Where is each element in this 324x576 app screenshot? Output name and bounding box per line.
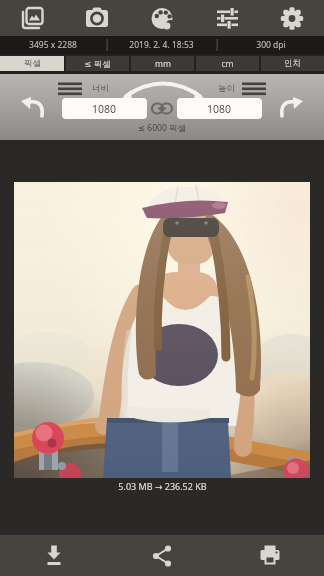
button[interactable]: ≤ 픽셀 [66, 56, 129, 71]
button[interactable]: 픽셀 [0, 56, 64, 71]
button[interactable] [56, 80, 84, 98]
button[interactable] [278, 96, 306, 122]
button[interactable]: cm [196, 56, 259, 71]
button[interactable] [18, 96, 46, 122]
button[interactable] [216, 535, 324, 576]
button[interactable]: 1080 [177, 98, 262, 119]
staticText: 3495 x 2288 [29, 39, 77, 51]
button[interactable] [150, 98, 174, 119]
staticText: 5.03 MB → 236.52 KB [118, 480, 207, 492]
staticText: 1080 [92, 102, 117, 116]
staticText: 2019. 2. 4. 18:53 [129, 39, 194, 51]
staticText: mm [155, 58, 171, 70]
staticText: 300 dpi [256, 39, 286, 51]
button[interactable] [194, 0, 259, 36]
staticText: 너비 [92, 83, 109, 94]
staticText: 픽셀 [24, 58, 41, 69]
button[interactable]: 1080 [62, 98, 147, 119]
button[interactable] [240, 80, 268, 98]
button[interactable] [0, 535, 108, 576]
button[interactable] [129, 0, 194, 36]
button[interactable] [259, 0, 324, 36]
button[interactable]: 인치 [261, 56, 324, 71]
button[interactable] [64, 0, 129, 36]
staticText: 인치 [284, 58, 301, 69]
staticText: ≤ 6000 픽셀 [138, 122, 186, 134]
button[interactable]: mm [131, 56, 194, 71]
staticText: 1080 [207, 102, 232, 116]
staticText: ≤ 픽셀 [84, 58, 111, 70]
staticText: 높이 [218, 83, 235, 94]
button[interactable] [108, 535, 216, 576]
button[interactable] [0, 0, 64, 36]
staticText: cm [221, 58, 234, 70]
